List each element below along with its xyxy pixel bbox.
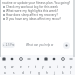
staticText: routine or update your fitness plan. You…	[2, 1, 73, 5]
button[interactable]: q	[1, 64, 8, 69]
staticText: p	[70, 65, 72, 69]
staticText: k	[62, 71, 64, 75]
staticText: l	[70, 71, 71, 75]
staticText: q	[4, 65, 6, 69]
staticText: r	[28, 65, 30, 69]
staticText: + 2.5 Pro	[3, 43, 15, 47]
button[interactable]: s	[10, 70, 18, 75]
staticText: a	[4, 71, 6, 75]
staticText: f	[30, 71, 32, 75]
button[interactable]: Voice input	[63, 42, 70, 49]
staticText: i	[57, 65, 58, 69]
button[interactable]: w	[9, 64, 16, 69]
staticText: g	[38, 71, 40, 75]
button[interactable]: f	[27, 70, 34, 75]
staticText: e	[20, 65, 22, 69]
button[interactable]: Keyboard tool	[18, 56, 24, 62]
staticText: s	[13, 71, 15, 75]
staticText: What can you help w	[26, 43, 54, 47]
button[interactable]: p	[68, 64, 74, 69]
staticText: If you have any ideas affect my recov?	[6, 17, 61, 21]
staticText: d	[22, 71, 24, 75]
button[interactable]: Keyboard tool	[51, 56, 57, 62]
staticText: j	[54, 71, 55, 75]
button[interactable]: t	[33, 64, 39, 69]
button[interactable]: h	[43, 70, 50, 75]
button[interactable]: o	[61, 64, 67, 69]
staticText: What were my highlights this week?	[6, 9, 59, 13]
button[interactable]: Model picker	[2, 42, 15, 48]
staticText: t	[35, 65, 37, 69]
button[interactable]: Keyboard tool	[35, 56, 41, 62]
staticText: Check my workout log for this week	[6, 5, 58, 9]
staticText: y	[42, 65, 44, 69]
staticText: u	[49, 65, 51, 69]
button[interactable]: g	[35, 70, 42, 75]
staticText: How does sleep affect my recovery?	[6, 13, 58, 17]
button[interactable]: Keyboard tool	[60, 56, 66, 62]
button[interactable]: l	[67, 70, 74, 75]
button[interactable]: Keyboard tool	[43, 56, 49, 62]
button[interactable]: j	[51, 70, 58, 75]
staticText: w	[11, 65, 14, 69]
button[interactable]: i	[54, 64, 60, 69]
staticText: o	[63, 65, 65, 69]
button[interactable]: a	[1, 70, 9, 75]
button[interactable]: Keyboard tool	[9, 56, 15, 62]
button[interactable]: Keyboard tool	[26, 56, 32, 62]
button[interactable]: e	[17, 64, 24, 69]
button[interactable]: k	[59, 70, 66, 75]
button[interactable]: r	[25, 64, 32, 69]
button[interactable]: y	[40, 64, 46, 69]
button[interactable]: Keyboard tool	[68, 56, 74, 62]
button[interactable]: Keyboard tool	[1, 56, 7, 62]
button[interactable]: u	[47, 64, 53, 69]
button[interactable]: d	[19, 70, 26, 75]
staticText: h	[46, 71, 48, 75]
